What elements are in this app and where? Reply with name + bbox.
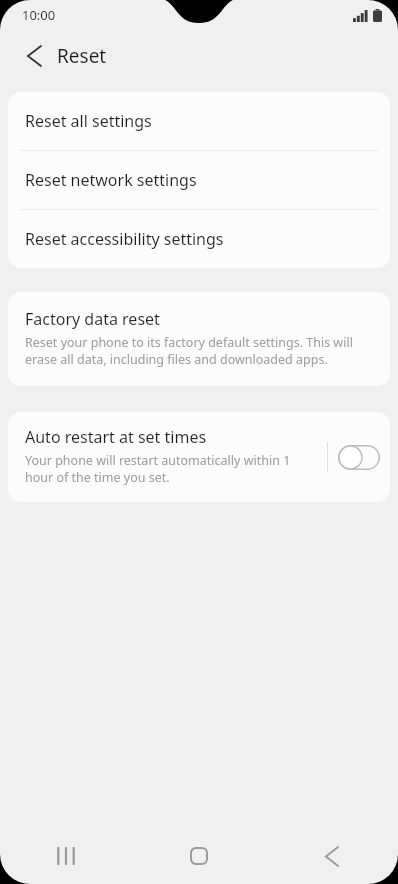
staticText: Reset (57, 43, 107, 69)
button[interactable]: Reset all settings (8, 92, 390, 150)
staticText: Reset accessibility settings (25, 228, 224, 250)
button[interactable]: Factory data reset (8, 292, 390, 386)
staticText: Auto restart at set times (25, 426, 207, 448)
button[interactable]: Auto restart at set times toggle (337, 440, 381, 474)
button[interactable]: Auto restart at set times (8, 412, 390, 502)
button[interactable]: Home (132, 828, 265, 884)
button[interactable]: Recent apps (0, 828, 132, 884)
staticText: Your phone will restart automatically wi… (25, 452, 319, 486)
staticText: Reset your phone to its factory default … (25, 334, 374, 368)
button[interactable]: Back (14, 36, 54, 76)
button[interactable]: Back (265, 828, 398, 884)
staticText: 10:00 (22, 6, 56, 24)
button[interactable]: Reset network settings (8, 151, 390, 209)
staticText: Reset all settings (25, 110, 152, 132)
staticText: Reset network settings (25, 169, 197, 191)
staticText: Factory data reset (25, 308, 160, 330)
button[interactable]: Reset accessibility settings (8, 210, 390, 268)
